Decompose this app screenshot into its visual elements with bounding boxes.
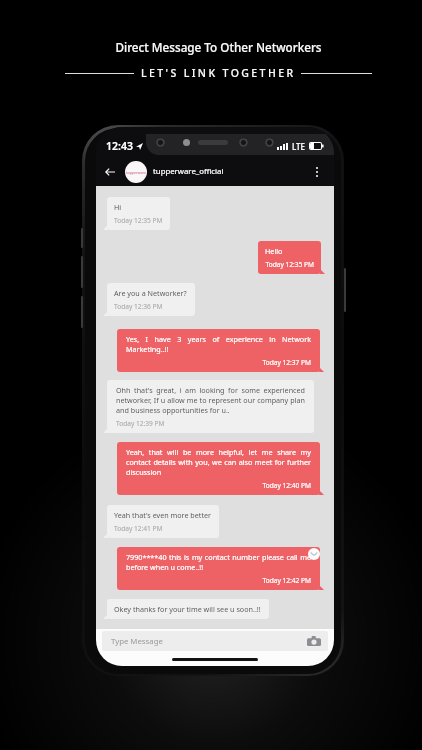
button[interactable]: More options — [308, 163, 326, 181]
button[interactable]: Ohh that's great, i am looking for some … — [107, 380, 314, 433]
staticText: Okey thanks for your time will see u soo… — [114, 604, 262, 614]
staticText: 12:43 — [106, 139, 133, 153]
staticText: tupperware — [126, 170, 146, 175]
button[interactable]: Yeah that's even more better — [107, 505, 219, 538]
staticText: Yeah, that will be more helpful, let me … — [126, 447, 311, 477]
staticText: Yes, I have 3 years of experience in Net… — [126, 334, 311, 354]
staticText: Hi — [114, 202, 163, 212]
staticText: LET'S LINK TOGETHER — [141, 66, 296, 80]
button[interactable]: Yeah, that will be more helpful, let me … — [117, 442, 320, 495]
staticText: Today 12:35 PM — [265, 260, 314, 269]
staticText: LTE — [292, 141, 306, 152]
button[interactable]: Are you a Networker? — [107, 283, 195, 316]
staticText: 7990****40 this is my contact number ple… — [126, 552, 311, 572]
staticText: Today 12:39 PM — [116, 419, 305, 428]
staticText: Today 12:35 PM — [114, 216, 163, 225]
button[interactable]: Hi — [107, 197, 170, 230]
other: Camera — [306, 635, 321, 647]
button[interactable]: Yes, I have 3 years of experience in Net… — [117, 329, 320, 372]
staticText: Ohh that's great, i am looking for some … — [116, 385, 305, 415]
button[interactable]: Hello — [258, 241, 321, 274]
button[interactable]: Back — [100, 162, 119, 181]
staticText: Today 12:40 PM — [126, 481, 311, 490]
staticText: Today 12:42 PM — [126, 576, 311, 585]
staticText: Type Message — [111, 636, 163, 647]
staticText: Direct Message To Other Networkers — [115, 39, 322, 55]
staticText: Are you a Networker? — [114, 288, 188, 298]
button[interactable]: Type Message — [102, 631, 328, 651]
staticText: Today 12:37 PM — [126, 358, 311, 367]
button[interactable]: Scroll to bottom — [308, 548, 320, 560]
staticText: Hello — [265, 246, 314, 256]
staticText: Yeah that's even more better — [114, 510, 212, 520]
button[interactable]: 7990****40 this is my contact number ple… — [117, 547, 320, 590]
staticText: Today 12:41 PM — [114, 524, 212, 533]
button[interactable]: Okey thanks for your time will see u soo… — [107, 599, 269, 619]
staticText: tupperware_official — [153, 166, 224, 177]
staticText: Today 12:36 PM — [114, 302, 188, 311]
